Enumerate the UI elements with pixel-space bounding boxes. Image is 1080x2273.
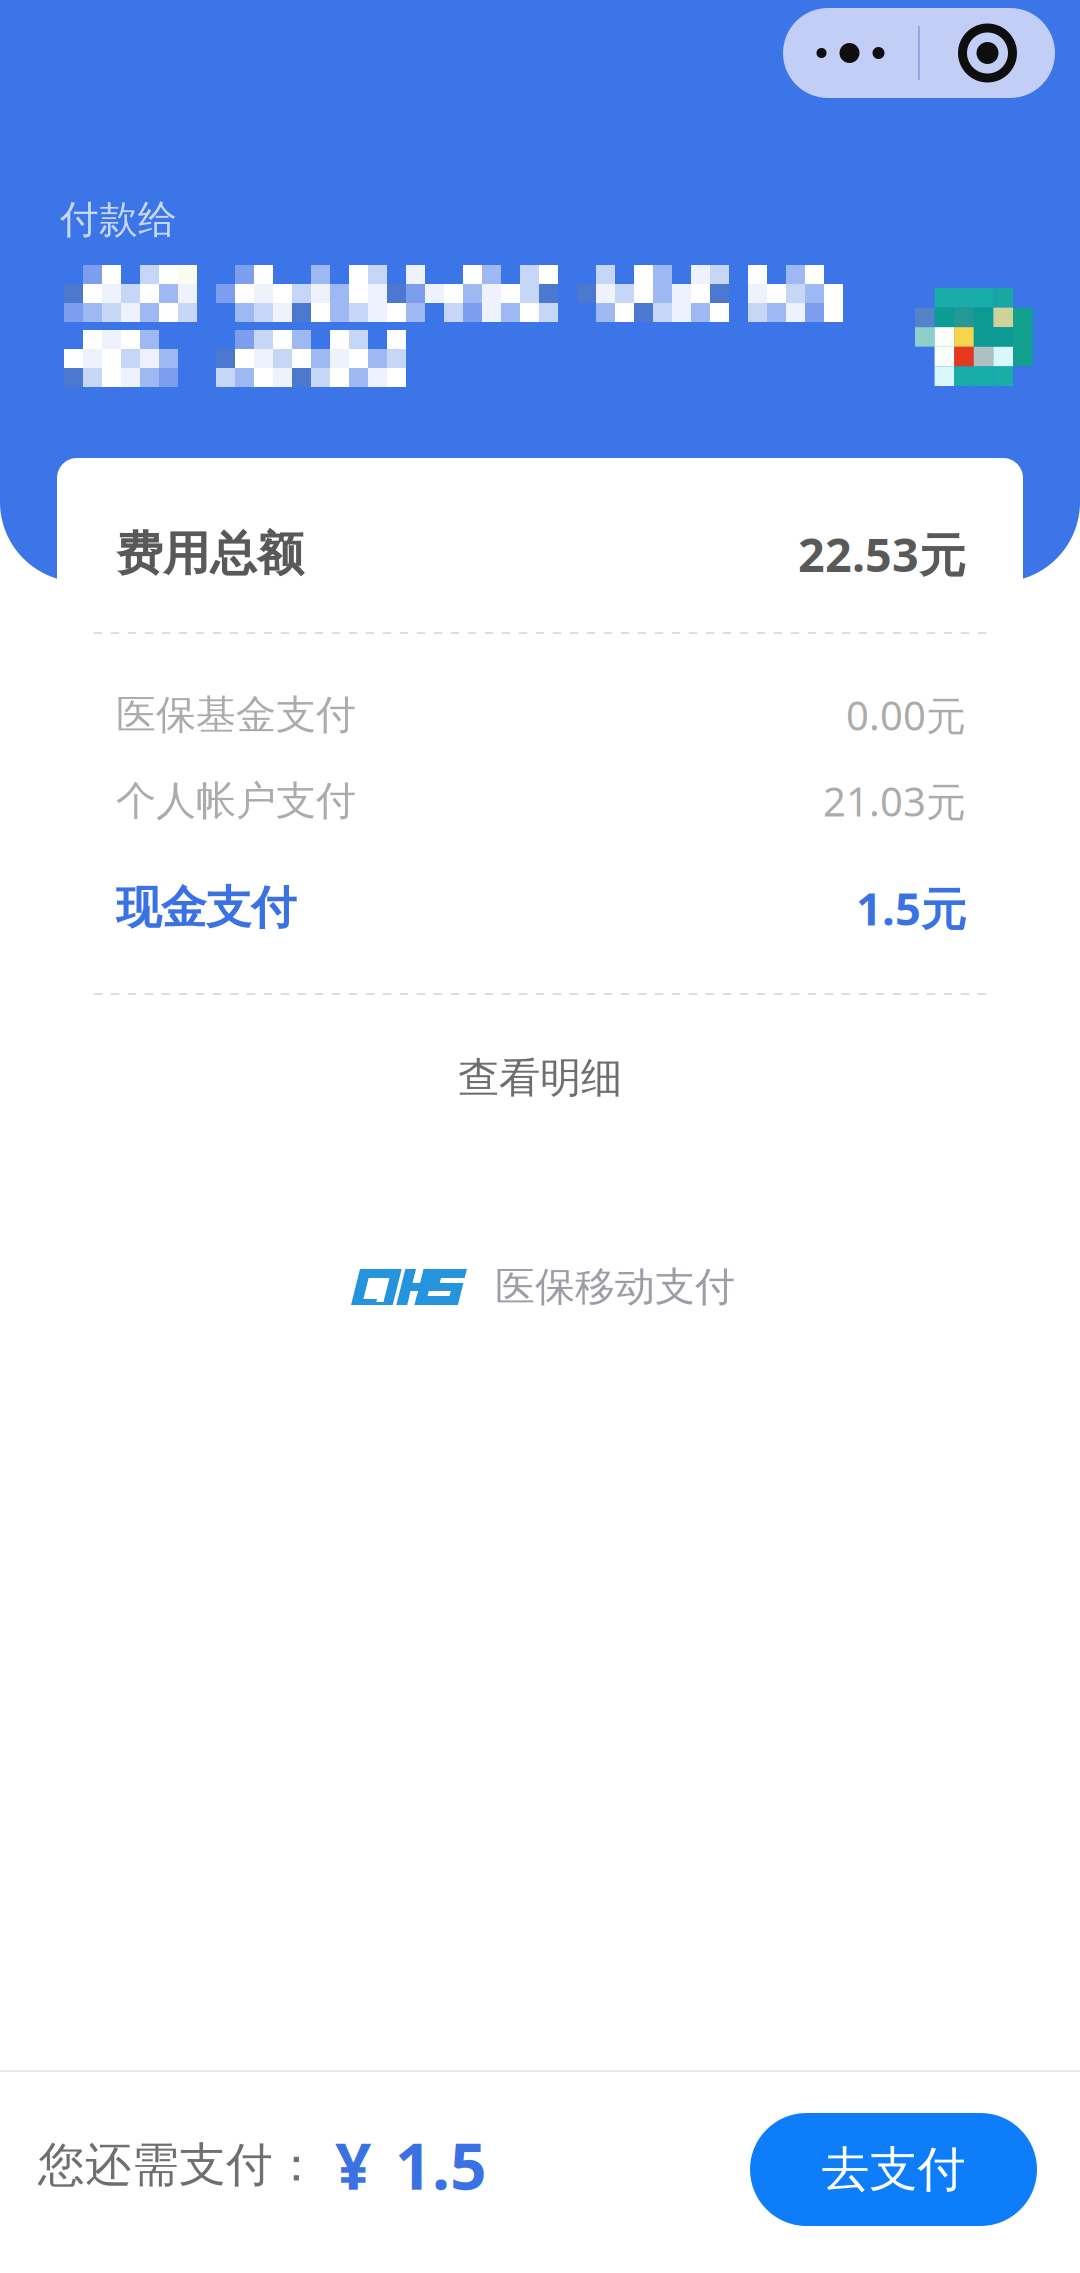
- staticText: 现金支付: [116, 880, 296, 936]
- staticText: 0.00元: [846, 688, 966, 741]
- staticText: 1.5: [395, 2122, 487, 2207]
- staticText: 付款给: [60, 196, 177, 243]
- staticText: 个人帐户支付: [116, 776, 356, 825]
- staticText: 1.5元: [856, 878, 966, 938]
- staticText: 医保基金支付: [116, 690, 356, 739]
- staticText: 21.03元: [823, 774, 966, 827]
- button[interactable]: More options and close: [783, 8, 1055, 98]
- staticText: 医保移动支付: [495, 1262, 735, 1311]
- staticText: 您还需支付：: [38, 2136, 320, 2194]
- staticText: ¥: [335, 2122, 372, 2207]
- button[interactable]: 查看明细: [57, 1026, 1023, 1130]
- staticText: 查看明细: [458, 1053, 622, 1103]
- button[interactable]: 去支付: [750, 2113, 1037, 2226]
- staticText: 22.53元: [798, 523, 966, 585]
- staticText: 去支付: [821, 2140, 965, 2199]
- staticText: 费用总额: [116, 525, 304, 583]
